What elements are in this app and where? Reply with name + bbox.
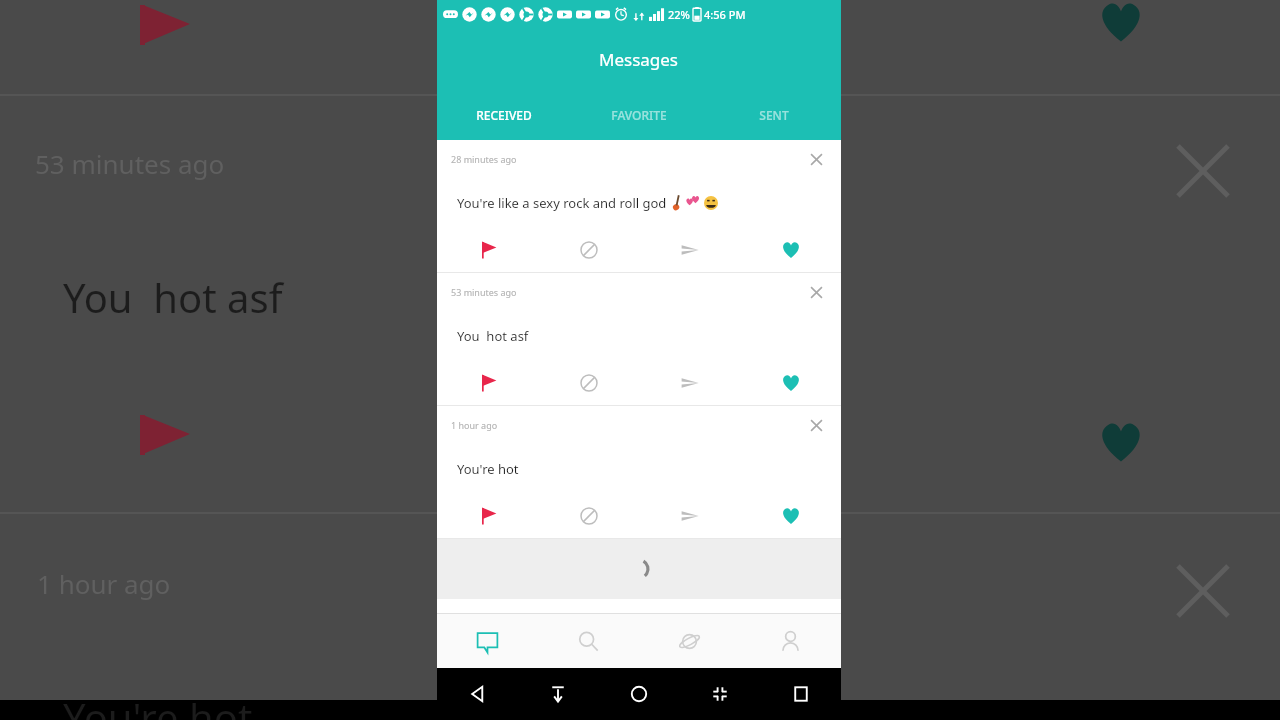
button[interactable]: Reply xyxy=(639,494,740,538)
button[interactable]: Block sender xyxy=(538,228,639,272)
button[interactable]: SENT xyxy=(706,90,841,140)
button[interactable]: Favorite xyxy=(740,494,841,538)
button[interactable]: Flag message xyxy=(437,228,538,272)
button[interactable]: Dismiss message xyxy=(801,410,831,440)
button[interactable]: Hide keyboard xyxy=(517,668,598,720)
staticText: 53 minutes ago xyxy=(35,146,225,181)
staticText: 53 minutes ago xyxy=(451,286,517,298)
button[interactable]: 28 minutes ago xyxy=(437,140,841,273)
button[interactable]: Flag message xyxy=(437,494,538,538)
button[interactable]: Explore xyxy=(639,614,740,668)
staticText: 22% xyxy=(668,7,690,22)
button[interactable]: 1 hour ago xyxy=(437,406,841,539)
button[interactable]: Reply xyxy=(639,228,740,272)
button[interactable]: Messages xyxy=(437,614,538,668)
button[interactable]: Split screen xyxy=(679,668,760,720)
button[interactable]: Profile xyxy=(740,614,841,668)
staticText: You're hot xyxy=(457,460,519,478)
staticText: You're hot xyxy=(63,690,253,720)
staticText: 28 minutes ago xyxy=(451,153,517,165)
staticText: You're like a sexy rock and roll god xyxy=(457,194,670,212)
button[interactable]: FAVORITE xyxy=(571,90,706,140)
button[interactable]: Home xyxy=(598,668,679,720)
staticText: FAVORITE xyxy=(611,107,667,123)
button[interactable]: Reply xyxy=(639,361,740,405)
button[interactable]: Favorite xyxy=(740,228,841,272)
staticText: SENT xyxy=(759,107,789,123)
button[interactable]: Recents xyxy=(760,668,841,720)
staticText: You hot asf xyxy=(457,327,529,345)
staticText: 1 hour ago xyxy=(37,566,171,601)
staticText: RECEIVED xyxy=(476,107,532,123)
button[interactable]: Block sender xyxy=(538,361,639,405)
button[interactable]: 53 minutes ago xyxy=(437,273,841,406)
staticText: You hot asf xyxy=(63,270,283,324)
button[interactable]: Search xyxy=(538,614,639,668)
staticText: Messages xyxy=(599,48,679,71)
button[interactable]: RECEIVED xyxy=(437,90,571,140)
button[interactable]: Dismiss message xyxy=(801,144,831,174)
button[interactable]: Block sender xyxy=(538,494,639,538)
button[interactable]: Back xyxy=(437,668,517,720)
button[interactable]: Flag message xyxy=(437,361,538,405)
staticText: 4:56 PM xyxy=(704,7,746,22)
button[interactable]: Favorite xyxy=(740,361,841,405)
staticText: 1 hour ago xyxy=(451,419,498,431)
button[interactable]: Dismiss message xyxy=(801,277,831,307)
